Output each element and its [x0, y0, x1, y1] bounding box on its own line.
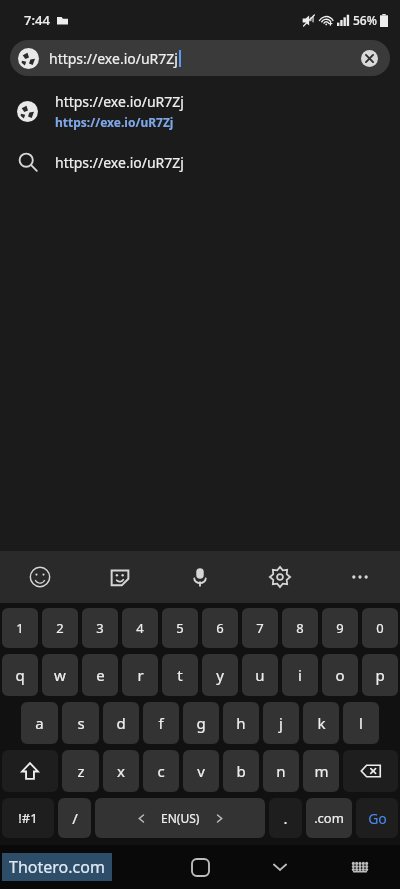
staticText: 7: [256, 619, 264, 637]
staticText: r: [137, 665, 144, 685]
button[interactable]: Go: [356, 798, 398, 838]
button[interactable]: v: [183, 750, 219, 792]
button[interactable]: e: [82, 654, 118, 696]
button[interactable]: Settings: [240, 551, 320, 603]
button[interactable]: https://exe.io/uR7Zj: [10, 40, 390, 76]
staticText: !#1: [18, 809, 38, 827]
staticText: .: [283, 808, 288, 828]
staticText: 4: [136, 619, 144, 637]
button[interactable]: Stickers: [80, 551, 160, 603]
staticText: h: [236, 713, 246, 733]
button[interactable]: https://exe.io/uR7Zj: [0, 140, 400, 184]
staticText: n: [276, 761, 286, 781]
button[interactable]: Clear text: [356, 45, 382, 71]
staticText: t: [177, 665, 183, 685]
staticText: u: [255, 665, 265, 685]
staticText: https://exe.io/uR7Zj: [55, 153, 184, 172]
button[interactable]: Thotero.com: [9, 853, 105, 881]
button[interactable]: 1: [2, 608, 38, 648]
button[interactable]: y: [202, 654, 238, 696]
button[interactable]: Emoji: [0, 551, 80, 603]
button[interactable]: 7: [242, 608, 278, 648]
button[interactable]: w: [42, 654, 78, 696]
staticText: EN(US): [161, 810, 200, 826]
staticText: Go: [368, 809, 387, 828]
button[interactable]: 4: [122, 608, 158, 648]
staticText: w: [54, 665, 66, 685]
button[interactable]: p: [362, 654, 398, 696]
staticText: s: [77, 713, 85, 733]
button[interactable]: /: [58, 798, 91, 838]
staticText: c: [157, 761, 165, 781]
staticText: https://exe.io/uR7Zj: [49, 49, 178, 68]
button[interactable]: i: [282, 654, 318, 696]
button[interactable]: d: [103, 702, 139, 744]
button[interactable]: .: [269, 798, 302, 838]
button[interactable]: Hide keyboard: [240, 845, 320, 889]
staticText: 7:44: [24, 11, 50, 29]
button[interactable]: 2: [42, 608, 78, 648]
button[interactable]: o: [322, 654, 358, 696]
staticText: 5: [176, 619, 184, 637]
button[interactable]: c: [143, 750, 179, 792]
staticText: m: [314, 761, 329, 781]
staticText: /: [72, 808, 78, 828]
button[interactable]: h: [223, 702, 259, 744]
button[interactable]: 9: [322, 608, 358, 648]
button[interactable]: r: [122, 654, 158, 696]
button[interactable]: a: [21, 702, 58, 744]
staticText: i: [298, 665, 302, 685]
button[interactable]: s: [62, 702, 99, 744]
button[interactable]: https://exe.io/uR7Zj: [0, 82, 400, 140]
button[interactable]: .com: [306, 798, 352, 838]
button[interactable]: g: [183, 702, 219, 744]
button[interactable]: Switch keyboard: [320, 845, 400, 889]
button[interactable]: 8: [282, 608, 318, 648]
button[interactable]: j: [263, 702, 299, 744]
staticText: q: [15, 665, 25, 685]
staticText: y: [216, 665, 224, 685]
staticText: z: [77, 761, 85, 781]
staticText: Thotero.com: [9, 856, 105, 878]
staticText: o: [335, 665, 345, 685]
button[interactable]: m: [303, 750, 339, 792]
staticText: x: [117, 761, 125, 781]
staticText: e: [96, 665, 105, 685]
staticText: p: [375, 665, 385, 685]
staticText: j: [279, 713, 283, 733]
button[interactable]: Backspace: [343, 750, 398, 792]
staticText: https://exe.io/uR7Zj: [55, 92, 184, 111]
button[interactable]: q: [2, 654, 38, 696]
button[interactable]: x: [103, 750, 139, 792]
button[interactable]: f: [143, 702, 179, 744]
button[interactable]: Voice input: [160, 551, 240, 603]
button[interactable]: Home: [160, 845, 240, 889]
button[interactable]: k: [303, 702, 339, 744]
button[interactable]: !#1: [2, 798, 54, 838]
button[interactable]: n: [263, 750, 299, 792]
staticText: d: [116, 713, 126, 733]
button[interactable]: More options: [320, 551, 400, 603]
staticText: 6: [216, 619, 224, 637]
button[interactable]: b: [223, 750, 259, 792]
button[interactable]: EN(US): [95, 798, 265, 838]
staticText: 8: [296, 619, 304, 637]
button[interactable]: z: [62, 750, 99, 792]
button[interactable]: l: [343, 702, 379, 744]
button[interactable]: t: [162, 654, 198, 696]
button[interactable]: 6: [202, 608, 238, 648]
staticText: f: [158, 713, 164, 733]
button[interactable]: u: [242, 654, 278, 696]
staticText: k: [317, 713, 326, 733]
staticText: .com: [314, 809, 344, 827]
staticText: https://exe.io/uR7Zj: [55, 114, 174, 130]
staticText: 2: [56, 619, 64, 637]
staticText: 9: [336, 619, 344, 637]
staticText: 0: [376, 619, 384, 637]
staticText: l: [359, 713, 363, 733]
button[interactable]: 0: [362, 608, 398, 648]
staticText: a: [35, 713, 44, 733]
button[interactable]: 5: [162, 608, 198, 648]
button[interactable]: Shift: [2, 750, 58, 792]
button[interactable]: 3: [82, 608, 118, 648]
